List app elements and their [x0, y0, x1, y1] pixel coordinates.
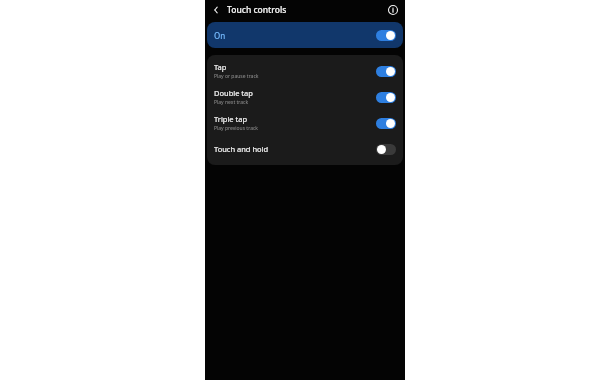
staticText: Touch controls — [227, 4, 287, 16]
button[interactable]: Off — [376, 144, 396, 155]
button[interactable]: Back — [208, 2, 224, 18]
staticText: Play previous track — [214, 125, 259, 132]
button[interactable]: On — [376, 118, 396, 129]
button[interactable]: On — [376, 30, 396, 41]
button[interactable]: Double tap — [207, 84, 403, 110]
button[interactable]: On — [376, 92, 396, 103]
staticText: On — [214, 30, 226, 41]
staticText: Touch and hold — [214, 144, 269, 154]
staticText: Double tap — [214, 88, 253, 98]
staticText: Play or pause track — [214, 73, 259, 80]
button[interactable]: Touch and hold — [207, 136, 403, 162]
button[interactable]: Tap — [207, 58, 403, 84]
button[interactable]: On — [376, 66, 396, 77]
button[interactable]: Triple tap — [207, 110, 403, 136]
staticText: Play next track — [214, 99, 249, 106]
button[interactable]: Information — [385, 2, 401, 18]
button[interactable]: On — [207, 22, 403, 48]
staticText: Triple tap — [214, 114, 248, 124]
staticText: Tap — [214, 62, 227, 72]
